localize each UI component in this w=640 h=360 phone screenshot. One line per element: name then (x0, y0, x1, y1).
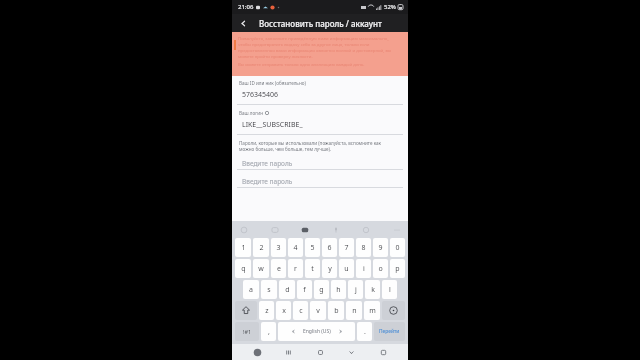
button[interactable]: 2 (253, 238, 269, 257)
button[interactable]: l (382, 280, 397, 299)
staticText: LIKE__SUBSCRIBE_ (242, 120, 303, 130)
button[interactable]: 1 (235, 238, 251, 257)
button[interactable]: English (US) (278, 322, 355, 341)
button[interactable]: . (357, 322, 372, 341)
button[interactable]: g (314, 280, 329, 299)
button[interactable]: x (276, 301, 291, 320)
staticText: z (265, 306, 269, 316)
staticText: Введите пароль (242, 159, 293, 168)
staticText: Введите пароль (242, 177, 293, 186)
staticText: k (371, 285, 375, 295)
staticText: 6 (327, 243, 332, 253)
staticText: 576345406 (242, 90, 279, 100)
staticText: p (395, 264, 400, 274)
staticText: g (319, 285, 324, 295)
staticText: , (268, 327, 270, 337)
button[interactable]: v (310, 301, 326, 320)
button[interactable]: Назад (236, 16, 250, 30)
staticText: 7 (344, 243, 349, 253)
button[interactable]: y (322, 259, 337, 278)
button[interactable]: o (373, 259, 388, 278)
staticText: 5 (310, 243, 315, 253)
staticText: y (328, 264, 332, 274)
button[interactable]: c (293, 301, 308, 320)
staticText: x (282, 306, 286, 316)
staticText: r (294, 264, 297, 274)
staticText: 0 (395, 243, 400, 253)
button[interactable]: Стикеры (238, 224, 249, 235)
button[interactable]: 6 (322, 238, 337, 257)
button[interactable]: 5 (305, 238, 320, 257)
button[interactable]: Удалить (382, 301, 405, 320)
staticText: Перейти (379, 328, 400, 335)
staticText: n (352, 306, 357, 316)
staticText: m (369, 306, 376, 316)
button[interactable]: f (297, 280, 312, 299)
button[interactable]: , (261, 322, 276, 341)
button[interactable]: GIF (269, 224, 280, 235)
button[interactable]: r (288, 259, 303, 278)
staticText: 8 (361, 243, 366, 253)
button[interactable]: p (390, 259, 405, 278)
button[interactable]: Shift (235, 301, 257, 320)
button[interactable]: Ваш логин (232, 110, 408, 134)
button[interactable]: Главная (314, 346, 327, 359)
button[interactable]: 7 (339, 238, 354, 257)
staticText: 4 (293, 243, 298, 253)
button[interactable]: u (339, 259, 354, 278)
button[interactable]: m (364, 301, 380, 320)
button[interactable]: 0 (390, 238, 405, 257)
button[interactable]: s (261, 280, 277, 299)
button[interactable]: 4 (288, 238, 303, 257)
button[interactable]: Скрыть клавиатуру (345, 346, 358, 359)
staticText: e (277, 264, 281, 274)
button[interactable]: n (346, 301, 362, 320)
button[interactable]: Введите пароль (232, 158, 408, 169)
button[interactable]: d (279, 280, 295, 299)
staticText: Восстановить пароль / аккаунт (259, 18, 382, 29)
button[interactable]: j (348, 280, 363, 299)
staticText: i (363, 264, 365, 274)
button[interactable]: h (331, 280, 346, 299)
button[interactable]: 3 (271, 238, 286, 257)
button[interactable]: q (235, 259, 251, 278)
button[interactable]: 9 (373, 238, 388, 257)
button[interactable]: 8 (356, 238, 371, 257)
button[interactable]: Ваш ID или ник (обязательно) (232, 80, 408, 104)
button[interactable]: Недавние (282, 346, 295, 359)
button[interactable]: Эмодзи (299, 224, 310, 235)
staticText: a (249, 285, 253, 295)
button[interactable]: b (328, 301, 344, 320)
staticText: 21:06 (238, 3, 254, 11)
staticText: Пожалуйста, заполните приведённую ниже и… (238, 35, 402, 59)
staticText: Ваш логин (239, 110, 263, 116)
staticText: Вы можете отправить только одно апелляци… (238, 61, 365, 67)
staticText: s (267, 285, 271, 295)
button[interactable]: t (305, 259, 320, 278)
staticText: Пароли, которые вы использовали (пожалуй… (239, 140, 381, 152)
staticText: v (316, 306, 320, 316)
button[interactable]: Настройки (360, 224, 371, 235)
button[interactable]: Введите пароль (232, 176, 408, 187)
staticText: q (241, 264, 246, 274)
button[interactable]: e (271, 259, 286, 278)
button[interactable]: z (259, 301, 274, 320)
staticText: c (299, 306, 303, 316)
staticText: o (378, 264, 383, 274)
button[interactable]: Клавиатура (251, 346, 264, 359)
staticText: 1 (241, 243, 246, 253)
button[interactable]: Перейти (374, 322, 405, 341)
staticText: d (285, 285, 290, 295)
button[interactable]: i (356, 259, 371, 278)
button[interactable]: w (253, 259, 269, 278)
staticText: English (US) (303, 328, 331, 335)
staticText: !#1 (243, 328, 252, 335)
button[interactable]: k (365, 280, 380, 299)
button[interactable]: Голосовой ввод (330, 224, 341, 235)
button[interactable]: !#1 (235, 322, 259, 341)
staticText: . (364, 327, 366, 337)
button[interactable]: a (243, 280, 259, 299)
staticText: j (355, 285, 357, 295)
button[interactable]: Скриншот (377, 346, 390, 359)
